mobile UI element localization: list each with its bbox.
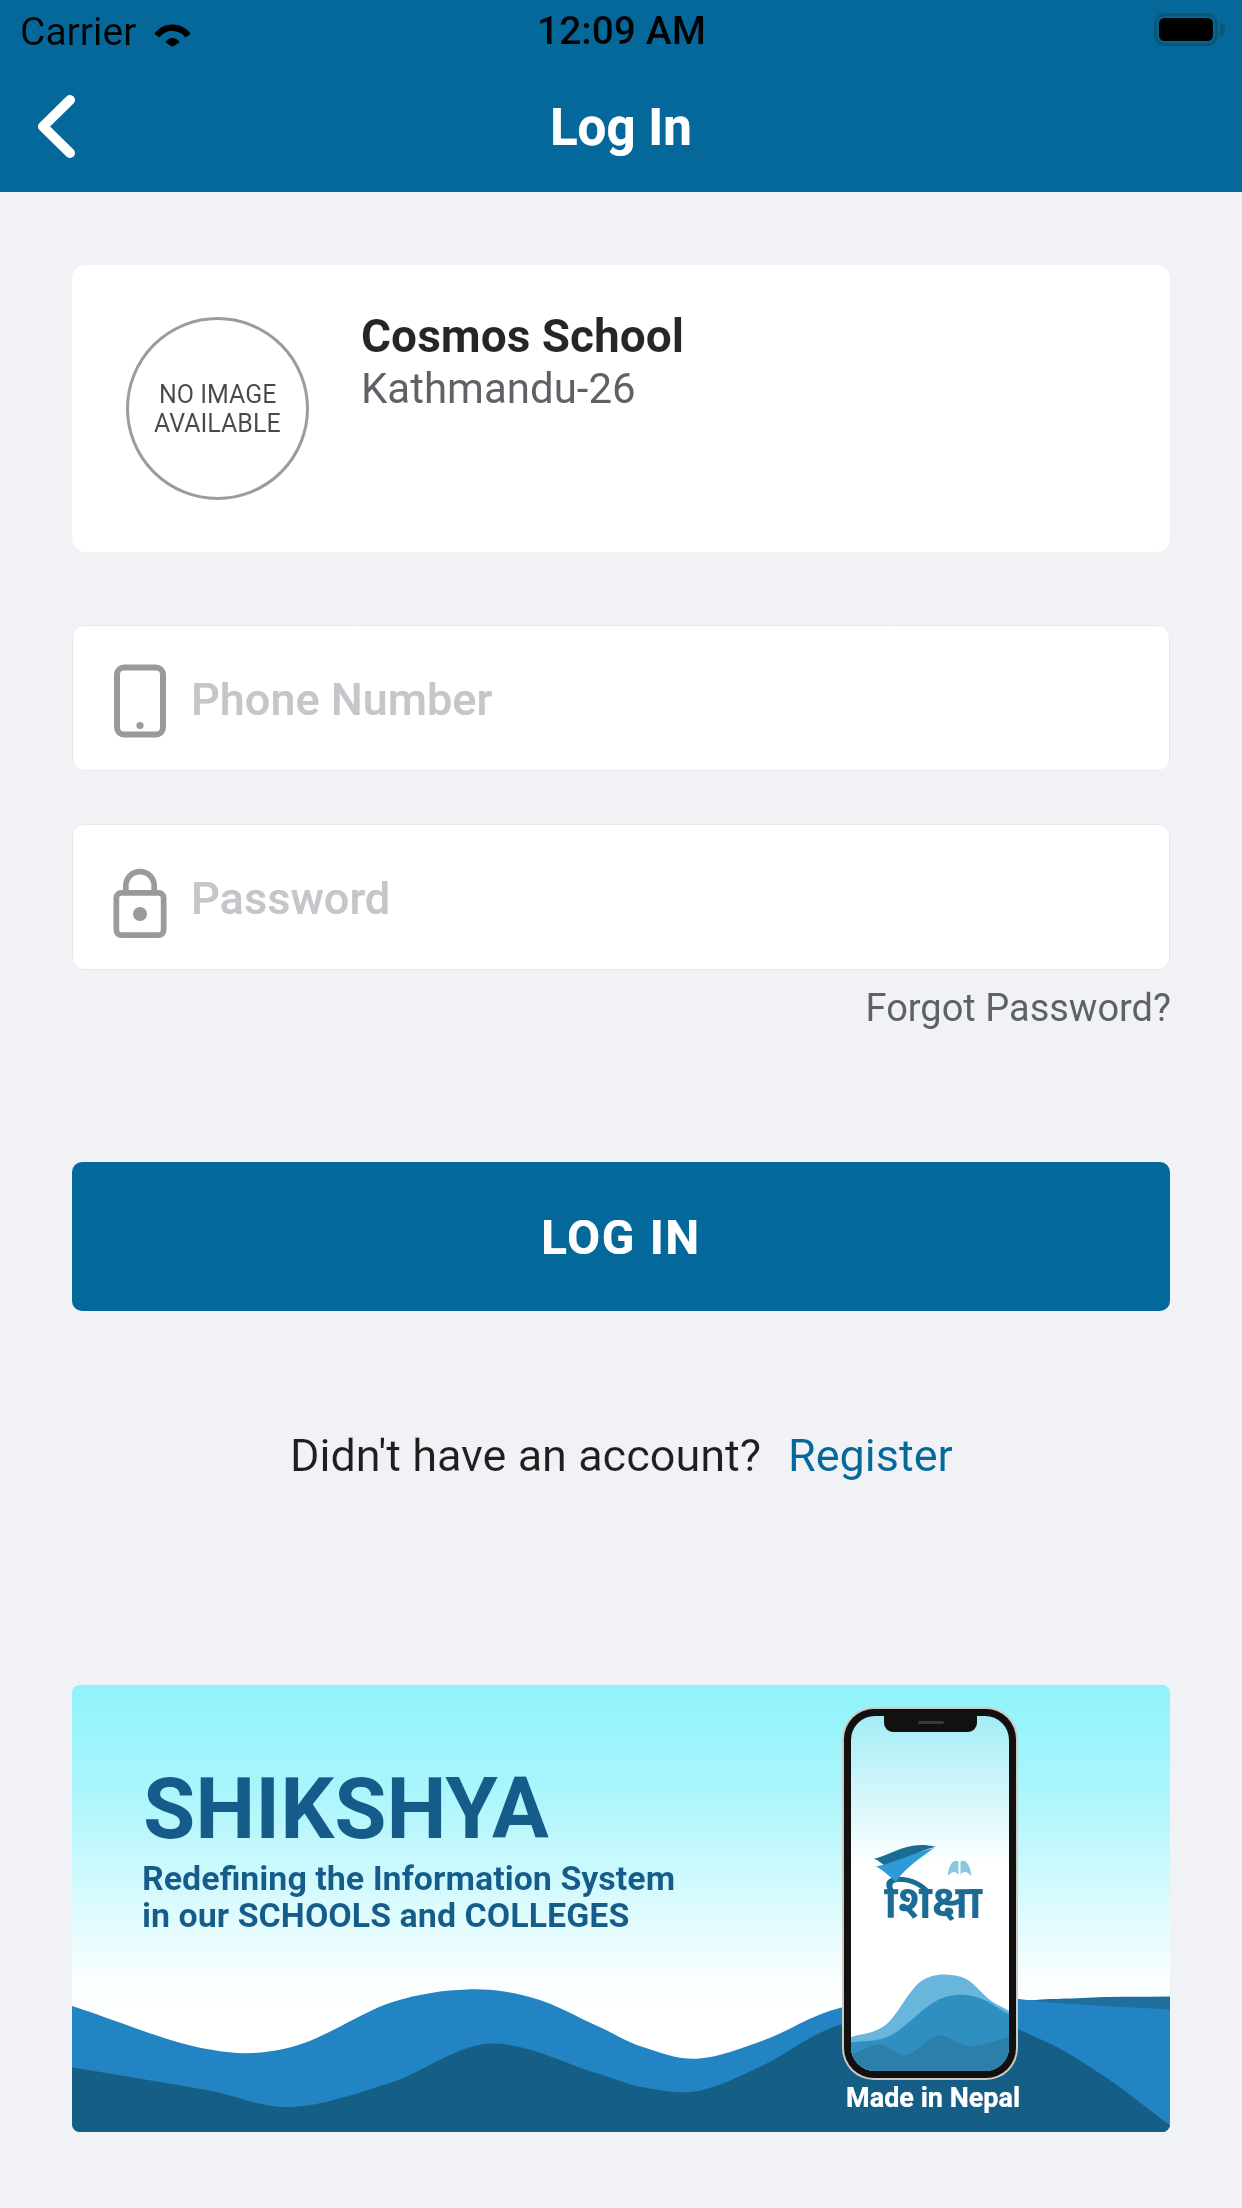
button[interactable]: LOG IN [72,1162,1170,1311]
button[interactable]: Back [0,66,120,192]
button[interactable]: Forgot Password? [0,986,1171,1031]
staticText: AVAILABLE [154,409,281,438]
staticText: शिक्षा [884,1869,983,1932]
staticText: Made in Nepal [846,2082,1021,2114]
staticText: NO IMAGE [159,380,277,409]
button[interactable]: Register [788,1429,953,1482]
staticText: Password [191,872,391,925]
staticText: LOG IN [541,1209,701,1265]
staticText: Redefining the Information System in our… [142,1858,676,1935]
staticText: Kathmandu-26 [361,364,636,413]
staticText: Phone Number [191,673,493,726]
staticText: 12:09 AM [537,8,706,54]
staticText: Log In [550,98,692,158]
staticText: SHIKSHYA [143,1759,549,1859]
staticText: Cosmos School [361,309,685,363]
staticText: Carrier [20,9,137,55]
staticText: Didn't have an account? [290,1429,762,1482]
button[interactable]: NO IMAGE [72,265,1170,552]
button[interactable]: Password [72,824,1170,970]
button[interactable]: SHIKSHYA [72,1685,1170,2132]
button[interactable]: Phone Number [72,625,1170,771]
